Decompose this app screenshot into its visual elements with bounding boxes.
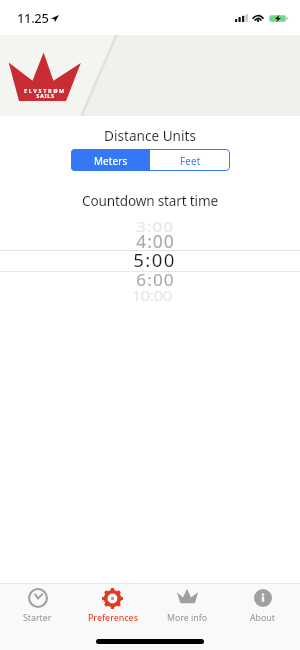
button[interactable]: More info bbox=[150, 584, 225, 650]
staticText: Feet bbox=[180, 154, 201, 167]
staticText: Starter bbox=[23, 612, 52, 624]
staticText: 5:00 bbox=[133, 247, 176, 272]
button[interactable]: Starter bbox=[0, 584, 75, 650]
staticText: 11.25 bbox=[17, 9, 49, 26]
staticText: Countdown start time bbox=[82, 191, 218, 210]
button[interactable]: Feet bbox=[150, 149, 230, 171]
staticText: Distance Units bbox=[104, 126, 196, 145]
staticText: 4:00 bbox=[136, 229, 175, 253]
button[interactable]: About bbox=[225, 584, 300, 650]
button[interactable]: Meters bbox=[71, 149, 150, 171]
staticText: SAILS bbox=[36, 92, 55, 100]
staticText: Meters bbox=[94, 154, 128, 167]
staticText: 6:00 bbox=[136, 268, 175, 291]
button[interactable]: Preferences bbox=[75, 584, 150, 650]
staticText: About bbox=[250, 612, 275, 624]
staticText: Preferences bbox=[88, 612, 138, 624]
staticText: ELVSTRØM bbox=[24, 87, 66, 95]
staticText: 10:00 bbox=[131, 286, 172, 305]
staticText: 3:00 bbox=[136, 217, 174, 236]
staticText: More info bbox=[167, 612, 208, 624]
